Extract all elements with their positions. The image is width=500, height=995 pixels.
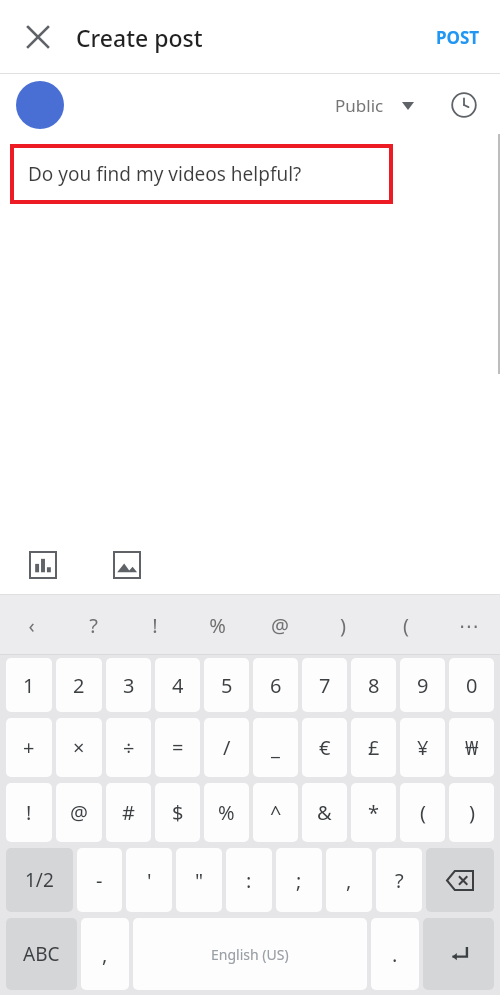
button[interactable]: 1 [6,658,52,712]
button[interactable]: Enter [423,918,494,990]
staticText: Create post [76,22,203,53]
staticText: $ [172,799,184,826]
staticText: + [23,734,35,761]
staticText: 4 [172,672,184,699]
button[interactable]: Schedule [444,85,484,125]
staticText: £ [368,734,380,761]
staticText: % [218,799,235,826]
button[interactable]: @ [248,595,311,655]
staticText: 1 [23,672,35,699]
staticText: @ [70,799,88,826]
button[interactable]: 9 [400,658,445,712]
staticText: , [346,867,352,894]
button[interactable]: ^ [253,783,298,842]
button[interactable]: : [226,848,272,912]
button[interactable]: _ [253,718,298,777]
button[interactable]: ? [62,595,124,655]
staticText: , [102,941,108,968]
button[interactable]: + [6,718,52,777]
button[interactable]: ¥ [400,718,445,777]
staticText: 8 [368,672,380,699]
staticText: 7 [319,672,331,699]
button[interactable]: = [155,718,200,777]
button[interactable]: Backspace [426,848,494,912]
button[interactable]: 0 [449,658,494,712]
button[interactable]: Create poll [22,544,64,586]
button[interactable]: × [56,718,102,777]
button[interactable]: % [186,595,248,655]
button[interactable]: $ [155,783,200,842]
button[interactable]: ! [124,595,186,655]
button[interactable]: ' [126,848,172,912]
button[interactable]: ) [311,595,374,655]
staticText: ) [469,799,475,826]
button[interactable]: POST [430,18,486,57]
staticText: - [96,867,103,894]
button[interactable]: - [77,848,122,912]
button[interactable]: Profile photo [16,81,64,129]
staticText: # [122,799,135,826]
button[interactable]: English (US) [133,918,367,990]
staticText: _ [271,734,280,761]
staticText: ; [296,867,302,894]
button[interactable]: ⋯ [437,595,500,655]
button[interactable]: 7 [302,658,347,712]
button[interactable]: Add image [106,544,148,586]
button[interactable]: 1/2 [6,848,73,912]
button[interactable]: 5 [204,658,249,712]
staticText: € [319,734,331,761]
staticText: / [223,734,231,761]
button[interactable]: # [106,783,151,842]
button[interactable]: ₩ [449,718,494,777]
button[interactable]: Do you find my videos helpful? [10,144,393,204]
button[interactable]: , [81,918,129,990]
staticText: ÷ [123,734,135,761]
staticText: Do you find my videos helpful? [28,161,302,187]
staticText: * [368,799,380,826]
button[interactable]: £ [351,718,396,777]
button[interactable]: 2 [56,658,102,712]
staticText: ₩ [465,734,479,761]
staticText: 9 [417,672,429,699]
staticText: ' [147,867,152,894]
button[interactable]: . [371,918,419,990]
button[interactable]: 4 [155,658,200,712]
staticText: Public [335,94,384,117]
button[interactable]: ‹ [0,595,62,655]
button[interactable]: ( [400,783,445,842]
staticText: ^ [270,799,282,826]
staticText: 1/2 [25,867,54,893]
staticText: ⋯ [459,614,479,637]
staticText: ¥ [417,734,429,761]
staticText: = [172,734,184,761]
button[interactable]: ( [374,595,437,655]
button[interactable]: Public [327,88,422,123]
button[interactable]: Close [14,13,62,61]
staticText: . [392,941,398,968]
button[interactable]: @ [56,783,102,842]
staticText: @ [271,612,289,639]
button[interactable]: " [176,848,222,912]
button[interactable]: ÷ [106,718,151,777]
staticText: ! [26,799,32,826]
button[interactable]: ? [376,848,422,912]
button[interactable]: ABC [6,918,77,990]
button[interactable]: ; [276,848,322,912]
button[interactable]: / [204,718,249,777]
button[interactable]: ! [6,783,52,842]
button[interactable]: % [204,783,249,842]
staticText: ! [152,612,158,639]
button[interactable]: 8 [351,658,396,712]
button[interactable]: & [302,783,347,842]
staticText: English (US) [211,945,289,964]
staticText: × [73,734,85,761]
button[interactable]: 3 [106,658,151,712]
button[interactable]: 6 [253,658,298,712]
staticText: 0 [466,672,478,699]
staticText: & [317,799,332,826]
button[interactable]: ) [449,783,494,842]
button[interactable]: , [326,848,372,912]
button[interactable]: * [351,783,396,842]
button[interactable]: € [302,718,347,777]
staticText: 2 [73,672,85,699]
